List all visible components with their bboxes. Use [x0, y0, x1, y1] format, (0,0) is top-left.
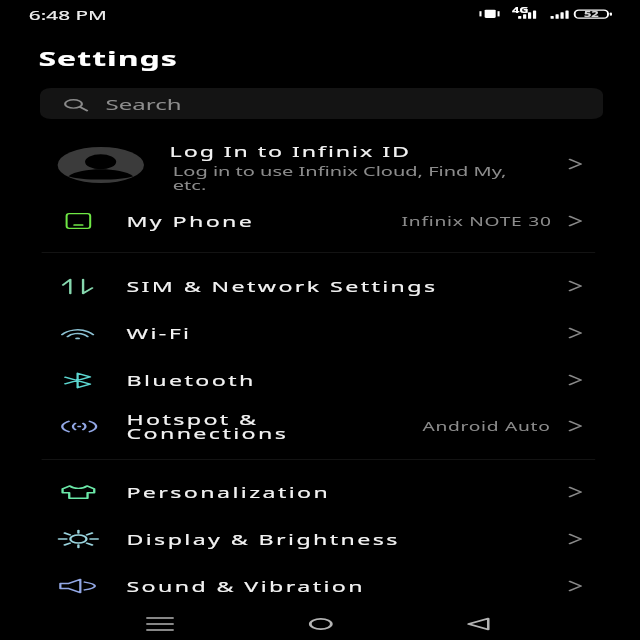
- button[interactable]: Display & Brightness: [0, 516, 640, 562]
- button[interactable]: Back: [453, 608, 504, 640]
- button[interactable]: Wi-Fi: [0, 310, 640, 356]
- staticText: Bluetooth: [126, 370, 256, 390]
- staticText: Log in to use Infinix Cloud, Find My, et…: [173, 163, 507, 194]
- staticText: Android Auto: [422, 418, 552, 434]
- button[interactable]: Hotspot & Connections: [0, 403, 640, 449]
- staticText: 52: [584, 8, 600, 19]
- staticText: Log In to Infinix ID: [170, 141, 411, 161]
- button[interactable]: Log In to Infinix ID: [0, 128, 640, 200]
- button[interactable]: Search: [40, 88, 603, 119]
- button[interactable]: SIM & Network Settings: [0, 263, 640, 309]
- staticText: My Phone: [126, 211, 254, 231]
- staticText: Sound & Vibration: [126, 576, 366, 596]
- staticText: Settings: [38, 45, 179, 72]
- staticText: Wi-Fi: [126, 323, 192, 343]
- button[interactable]: My Phone: [0, 198, 640, 244]
- button[interactable]: Personalization: [0, 469, 640, 515]
- staticText: 6:48 PM: [29, 6, 107, 24]
- button[interactable]: Sound & Vibration: [0, 563, 640, 609]
- button[interactable]: Home: [294, 608, 346, 640]
- staticText: Search: [106, 94, 182, 114]
- staticText: Infinix NOTE 30: [402, 213, 552, 229]
- staticText: Personalization: [126, 482, 331, 502]
- button[interactable]: Recents: [134, 608, 186, 640]
- staticText: 4G: [512, 4, 530, 15]
- button[interactable]: Bluetooth: [0, 357, 640, 403]
- staticText: Display & Brightness: [126, 529, 400, 549]
- staticText: Hotspot & Connections: [126, 409, 290, 443]
- staticText: SIM & Network Settings: [126, 276, 438, 296]
